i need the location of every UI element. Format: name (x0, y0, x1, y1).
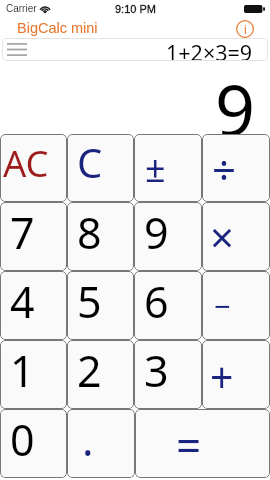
staticText: 7 (10, 203, 35, 262)
staticText: × (210, 208, 235, 265)
button[interactable]: Menu (2, 38, 268, 61)
button[interactable]: 8 (67, 202, 134, 271)
button[interactable]: 3 (134, 340, 202, 409)
button[interactable]: ÷ (202, 134, 270, 202)
staticText: 9 (144, 203, 169, 262)
staticText: 8 (77, 203, 102, 262)
button[interactable]: = (135, 409, 270, 478)
staticText: − (214, 286, 231, 325)
staticText: + (210, 349, 234, 405)
button[interactable]: 6 (134, 271, 202, 340)
staticText: Carrier (6, 3, 37, 14)
button[interactable]: 2 (67, 340, 134, 409)
staticText: 1+2×3=9 (166, 38, 253, 61)
button[interactable]: AC (0, 134, 67, 202)
staticText: 4 (10, 272, 35, 331)
staticText: ± (145, 144, 166, 193)
button[interactable]: Info (236, 20, 254, 38)
button[interactable]: − (202, 271, 270, 340)
staticText: 0 (10, 410, 35, 469)
staticText: 3 (144, 341, 169, 400)
staticText: 9:10 PM (115, 3, 156, 15)
button[interactable]: Menu (2, 38, 31, 61)
staticText: 1 (10, 341, 35, 400)
button[interactable]: + (202, 340, 270, 409)
staticText: BigCalc mini (17, 20, 98, 36)
button[interactable]: C (67, 134, 134, 202)
button[interactable]: 7 (0, 202, 67, 271)
staticText: . (82, 410, 94, 469)
staticText: 5 (77, 272, 102, 331)
button[interactable]: 1 (0, 340, 67, 409)
button[interactable]: 9 (134, 202, 202, 271)
staticText: 9 (215, 61, 256, 134)
button[interactable]: 0 (0, 409, 67, 478)
staticText: 2 (77, 341, 102, 400)
staticText: C (77, 135, 103, 189)
button[interactable]: 4 (0, 271, 67, 340)
button[interactable]: ± (134, 134, 202, 202)
staticText: = (176, 415, 202, 475)
button[interactable]: 5 (67, 271, 134, 340)
staticText: AC (3, 138, 49, 188)
button[interactable]: × (202, 202, 270, 271)
button[interactable]: . (67, 409, 135, 478)
staticText: 6 (144, 272, 169, 331)
staticText: ÷ (212, 140, 237, 197)
staticText: i (244, 23, 247, 36)
